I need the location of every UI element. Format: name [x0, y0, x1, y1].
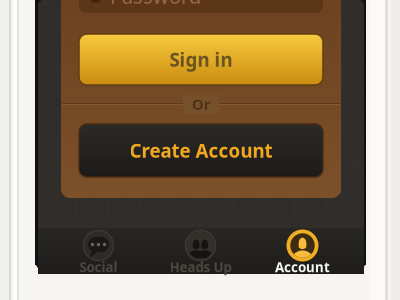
button[interactable]: Heads Up: [149, 226, 251, 274]
staticText: Password: [110, 0, 201, 9]
staticText: Heads Up: [169, 258, 231, 276]
staticText: Or: [192, 94, 210, 114]
staticText: Social: [79, 258, 117, 276]
staticText: Account: [275, 258, 330, 276]
button[interactable]: Create Account: [61, 124, 341, 177]
button[interactable]: Social: [47, 226, 149, 274]
staticText: Create Account: [129, 138, 272, 163]
button[interactable]: Account: [251, 226, 353, 274]
staticText: Sign in: [169, 47, 232, 72]
button[interactable]: Sign in: [61, 34, 341, 85]
